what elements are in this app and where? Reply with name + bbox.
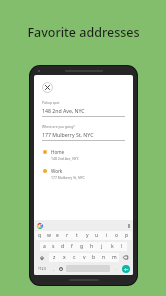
staticText: Work — [51, 168, 63, 174]
staticText: k — [111, 243, 114, 250]
staticText: n — [102, 254, 106, 261]
button[interactable]: p — [122, 231, 132, 240]
button[interactable]: n — [99, 253, 109, 262]
button[interactable]: k — [107, 242, 117, 251]
staticText: c — [73, 254, 76, 261]
button[interactable]: b — [89, 253, 99, 262]
button[interactable]: e — [53, 231, 62, 240]
staticText: p — [125, 232, 129, 239]
staticText: s — [52, 243, 55, 250]
button[interactable]: y — [82, 231, 92, 240]
staticText: u — [95, 232, 99, 239]
button[interactable]: Emoji — [57, 264, 65, 273]
staticText: 177 Mulberry St, NYC — [42, 131, 94, 138]
staticText: t — [76, 232, 78, 239]
staticText: r — [66, 232, 69, 239]
staticText: Favorite addresses — [27, 24, 140, 41]
staticText: . — [115, 266, 116, 271]
staticText: o — [115, 232, 119, 239]
button[interactable]: Backspace — [119, 253, 132, 262]
staticText: m — [112, 254, 117, 261]
staticText: Pickup spot — [42, 101, 60, 105]
button[interactable]: l — [117, 242, 127, 251]
button[interactable]: i — [102, 231, 112, 240]
staticText: j — [101, 243, 103, 250]
staticText: ?123 — [38, 266, 46, 271]
button[interactable]: Shift — [35, 253, 49, 262]
staticText: e — [56, 232, 59, 239]
button[interactable]: ?123 — [35, 264, 49, 273]
staticText: , — [53, 266, 54, 271]
button[interactable]: g — [77, 242, 87, 251]
button[interactable]: j — [97, 242, 107, 251]
button[interactable]: Enter — [122, 265, 130, 273]
button[interactable]: x — [59, 253, 69, 262]
staticText: x — [63, 254, 66, 261]
button[interactable]: q — [35, 231, 44, 240]
staticText: 177 Mulberry St, NYC — [51, 175, 85, 180]
button[interactable]: Google — [37, 223, 43, 229]
button[interactable]: u — [92, 231, 102, 240]
staticText: v — [83, 254, 86, 261]
staticText: y — [86, 232, 89, 239]
button[interactable]: t — [72, 231, 82, 240]
button[interactable]: Close — [42, 82, 53, 93]
button[interactable]: Where are you going? — [42, 125, 125, 141]
staticText: q — [38, 232, 42, 239]
staticText: 148 2nd Ave, NYC — [51, 156, 79, 161]
staticText: g — [80, 243, 84, 250]
button[interactable]: s — [49, 242, 58, 251]
staticText: h — [90, 243, 94, 250]
button[interactable]: f — [67, 242, 77, 251]
button[interactable]: c — [69, 253, 79, 262]
staticText: Home — [51, 149, 65, 155]
button[interactable]: z — [49, 253, 59, 262]
staticText: l — [121, 243, 123, 250]
staticText: w — [47, 232, 51, 239]
button[interactable]: o — [112, 231, 122, 240]
button[interactable]: Home — [42, 149, 125, 161]
button[interactable]: Work — [42, 168, 125, 180]
button[interactable]: a — [40, 242, 49, 251]
staticText: i — [106, 232, 108, 239]
staticText: a — [43, 243, 46, 250]
button[interactable]: m — [109, 253, 119, 262]
staticText: Where are you going? — [42, 125, 75, 129]
staticText: d — [61, 243, 65, 250]
button[interactable]: h — [87, 242, 97, 251]
button[interactable]: d — [58, 242, 67, 251]
button[interactable]: , — [49, 264, 57, 273]
staticText: f — [71, 243, 73, 250]
button[interactable]: Pickup spot — [42, 101, 125, 117]
staticText: 148 2nd Ave, NYC — [42, 107, 85, 114]
button[interactable]: r — [62, 231, 72, 240]
button[interactable]: v — [79, 253, 89, 262]
staticText: b — [92, 254, 96, 261]
staticText: z — [53, 254, 56, 261]
button[interactable]: w — [44, 231, 53, 240]
